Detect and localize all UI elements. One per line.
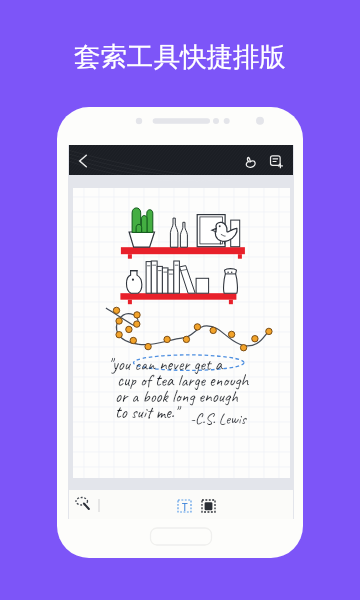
staticText: 套索工具快捷排版 xyxy=(74,40,286,73)
button[interactable]: Image tool xyxy=(196,494,221,519)
staticText: or a book long enough xyxy=(115,386,238,407)
button[interactable]: Back xyxy=(70,148,96,174)
staticText: "you can never get a xyxy=(108,354,223,375)
button[interactable]: Select tool xyxy=(237,147,263,173)
staticText: cup of tea large enough xyxy=(117,370,249,391)
button[interactable]: New note xyxy=(263,147,289,173)
staticText: to suit me." xyxy=(115,402,179,423)
staticText: T xyxy=(182,500,188,514)
staticText: -C.S. Lewis xyxy=(190,410,246,429)
button[interactable]: Lasso tool xyxy=(72,493,94,515)
button[interactable]: Text tool xyxy=(172,494,197,519)
